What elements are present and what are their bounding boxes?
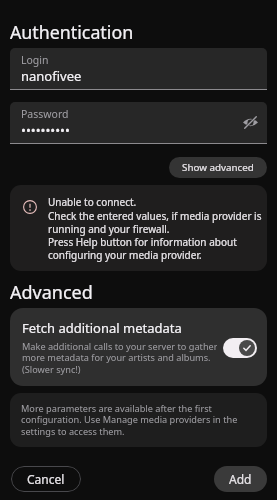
button[interactable]: Login [10,48,267,89]
staticText: Authentication [10,20,134,44]
button[interactable]: Cancel [11,466,81,492]
staticText: Login [21,53,49,67]
staticText: nanofivee [21,67,82,85]
staticText: •••••••••• [21,121,70,139]
staticText: Make additional calls to your server to … [22,340,217,376]
staticText: Cancel [27,471,65,487]
staticText: Advanced [10,280,93,305]
button[interactable]: Password [10,102,267,143]
button[interactable]: Show advanced [169,157,267,178]
staticText: Password [21,107,69,121]
button[interactable]: Add [214,466,267,492]
staticText: Fetch additional metadata [22,319,182,337]
other: Toggle password visibility [242,114,259,131]
staticText: Show advanced [182,161,254,174]
staticText: Unable to connect. Check the entered val… [48,195,262,261]
button[interactable]: Fetch additional metadata [10,308,267,386]
staticText: More parameters are available after the … [21,402,238,438]
staticText: Add [229,471,252,487]
